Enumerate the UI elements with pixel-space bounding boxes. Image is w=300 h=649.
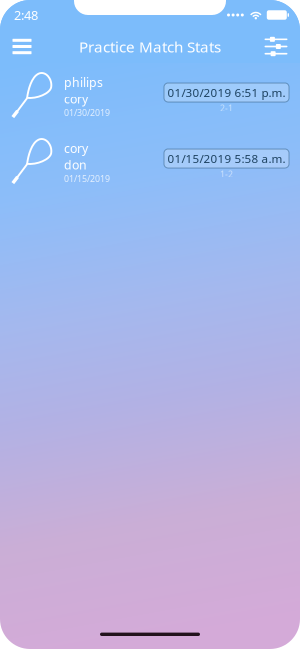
staticText: don	[64, 156, 87, 173]
staticText: 01/15/2019 5:58 a.m.	[167, 151, 285, 166]
button[interactable]: philips	[0, 63, 300, 129]
staticText: 01/30/2019	[64, 107, 110, 119]
button[interactable]: cory	[0, 129, 300, 195]
button[interactable]: Menu	[0, 30, 44, 63]
button[interactable]: Filter	[254, 30, 298, 63]
staticText: cory	[64, 140, 88, 156]
staticText: 1-2	[220, 168, 233, 180]
staticText: philips	[64, 74, 103, 90]
staticText: Practice Match Stats	[79, 36, 221, 57]
staticText: 2-1	[220, 102, 233, 114]
staticText: 2:48	[14, 6, 38, 24]
staticText: cory	[64, 90, 88, 107]
staticText: 01/30/2019 6:51 p.m.	[167, 85, 285, 100]
staticText: 01/15/2019	[64, 173, 110, 185]
